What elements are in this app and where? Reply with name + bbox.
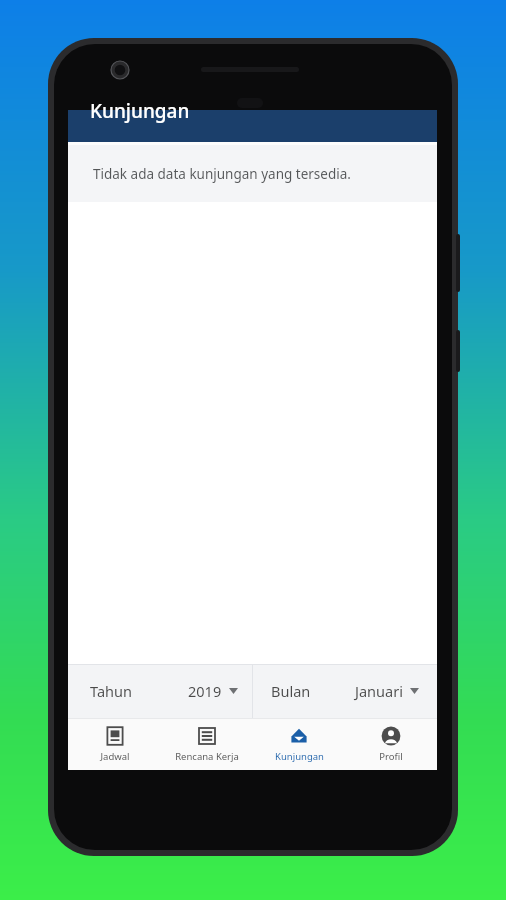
button[interactable]: Jadwal xyxy=(68,718,161,770)
staticText: Tidak ada data kunjungan yang tersedia. xyxy=(93,165,351,183)
button[interactable]: Profil xyxy=(345,718,437,770)
staticText: Bulan xyxy=(271,681,311,701)
button[interactable]: Rencana Kerja xyxy=(161,718,253,770)
staticText: Profil xyxy=(379,750,403,763)
button[interactable]: Kunjungan xyxy=(253,718,345,770)
staticText: Januari xyxy=(355,681,403,701)
staticText: Kunjungan xyxy=(90,98,190,124)
staticText: Jadwal xyxy=(100,750,130,763)
staticText: 2019 xyxy=(188,681,222,701)
staticText: Kunjungan xyxy=(275,750,324,763)
staticText: Tahun xyxy=(90,681,132,701)
button[interactable]: Tahun xyxy=(68,664,252,718)
staticText: Rencana Kerja xyxy=(175,750,239,763)
button[interactable]: Bulan xyxy=(253,664,437,718)
